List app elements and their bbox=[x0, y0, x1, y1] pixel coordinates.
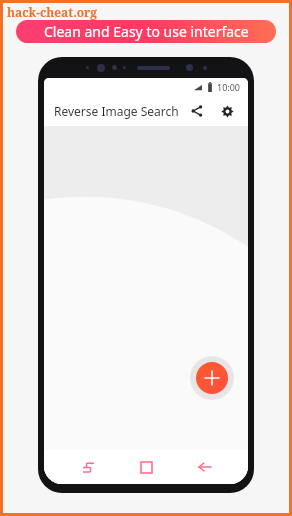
button[interactable]: Add bbox=[196, 362, 228, 394]
staticText: hack-cheat.org bbox=[7, 4, 98, 20]
staticText: Clean and Easy to use interface bbox=[44, 22, 249, 41]
staticText: Reverse Image Search bbox=[54, 103, 179, 119]
staticText: 10:00 bbox=[217, 81, 241, 93]
button[interactable]: Home bbox=[131, 452, 161, 482]
button[interactable]: Settings bbox=[216, 100, 238, 122]
button[interactable]: Recents bbox=[73, 452, 103, 482]
button[interactable]: Share bbox=[186, 100, 208, 122]
button[interactable]: Back bbox=[190, 452, 220, 482]
